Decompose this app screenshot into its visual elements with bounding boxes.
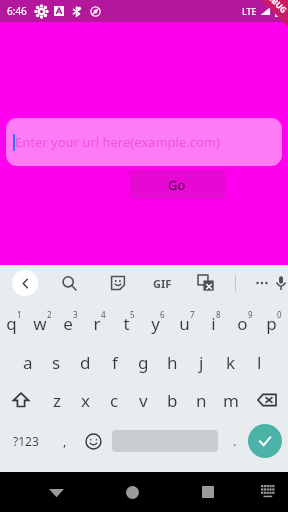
button[interactable]: x	[71, 381, 100, 419]
staticText: a	[23, 351, 33, 374]
button[interactable]: b	[158, 381, 187, 419]
button[interactable]: Search	[57, 271, 81, 295]
staticText: q	[6, 312, 17, 335]
staticText: Go	[168, 176, 186, 194]
staticText: 9	[248, 309, 253, 320]
button[interactable]: ?123	[0, 419, 52, 463]
staticText: i	[211, 312, 216, 335]
staticText: LTE	[242, 5, 257, 17]
staticText: GIF	[153, 276, 172, 291]
button[interactable]: Go	[129, 170, 225, 199]
staticText: 0	[277, 309, 282, 320]
staticText: e	[63, 312, 73, 335]
button[interactable]: Enter your url here(example.com)	[6, 118, 282, 166]
button[interactable]: Voice input	[274, 271, 288, 295]
staticText: .	[233, 432, 237, 450]
button[interactable]: g	[129, 343, 158, 381]
staticText: 8	[216, 309, 221, 320]
button[interactable]: ,	[52, 419, 78, 463]
staticText: g	[138, 351, 149, 374]
staticText: ?123	[13, 433, 39, 449]
button[interactable]: Emoji	[78, 419, 108, 463]
staticText: DEBUG	[262, 0, 288, 15]
staticText: o	[237, 312, 248, 335]
button[interactable]: Stickers	[106, 271, 130, 295]
button[interactable]: z	[42, 381, 71, 419]
staticText: p	[266, 312, 277, 335]
button[interactable]: v	[129, 381, 158, 419]
button[interactable]: p	[259, 303, 288, 343]
staticText: 3	[73, 309, 78, 320]
staticText: b	[167, 389, 178, 412]
staticText: s	[52, 351, 61, 374]
staticText: ,	[63, 432, 67, 450]
staticText: y	[151, 312, 160, 335]
button[interactable]: k	[216, 343, 245, 381]
button[interactable]: Home	[115, 475, 149, 509]
staticText: z	[53, 389, 61, 412]
staticText: r	[93, 312, 101, 335]
button[interactable]: n	[187, 381, 216, 419]
staticText: n	[196, 389, 207, 412]
button[interactable]: q	[0, 303, 28, 343]
button[interactable]: l	[245, 343, 274, 381]
staticText: l	[257, 351, 262, 374]
button[interactable]: Switch keyboard	[254, 478, 282, 506]
button[interactable]: f	[100, 343, 129, 381]
staticText: c	[110, 389, 119, 412]
button[interactable]: h	[158, 343, 187, 381]
button[interactable]: u	[172, 303, 201, 343]
staticText: x	[81, 389, 90, 412]
staticText: h	[167, 351, 178, 374]
button[interactable]: Recents	[191, 475, 225, 509]
button[interactable]: i	[201, 303, 230, 343]
button[interactable]: Back	[12, 270, 38, 296]
staticText: 2	[47, 309, 52, 320]
button[interactable]: Shift	[0, 381, 42, 419]
staticText: 5	[130, 309, 135, 320]
staticText: 4	[101, 309, 106, 320]
button[interactable]: Translate	[194, 271, 218, 295]
staticText: k	[226, 351, 236, 374]
button[interactable]: t	[114, 303, 143, 343]
button[interactable]: m	[216, 381, 245, 419]
staticText: f	[112, 351, 118, 374]
button[interactable]: GIF	[153, 276, 172, 291]
button[interactable]: d	[71, 343, 100, 381]
staticText: u	[179, 312, 190, 335]
staticText: 1	[17, 309, 22, 320]
staticText: m	[223, 389, 239, 412]
staticText: j	[199, 351, 204, 374]
staticText: 6:46	[7, 4, 27, 18]
button[interactable]: y	[143, 303, 172, 343]
button[interactable]: c	[100, 381, 129, 419]
button[interactable]: r	[85, 303, 114, 343]
button[interactable]: s	[42, 343, 71, 381]
button[interactable]: a	[13, 343, 42, 381]
button[interactable]: Backspace	[245, 381, 288, 419]
staticText: 6	[160, 309, 165, 320]
button[interactable]: w	[28, 303, 56, 343]
staticText: t	[123, 312, 130, 335]
button[interactable]: Enter	[248, 424, 282, 458]
staticText: 7	[190, 309, 195, 320]
staticText: v	[139, 389, 148, 412]
button[interactable]: More options	[250, 271, 274, 295]
button[interactable]: e	[56, 303, 85, 343]
staticText: Enter your url here(example.com)	[15, 133, 220, 151]
button[interactable]: o	[230, 303, 259, 343]
button[interactable]: .	[222, 419, 248, 463]
button[interactable]: Back	[39, 475, 73, 509]
button[interactable]: j	[187, 343, 216, 381]
staticText: d	[80, 351, 91, 374]
staticText: w	[33, 312, 47, 335]
